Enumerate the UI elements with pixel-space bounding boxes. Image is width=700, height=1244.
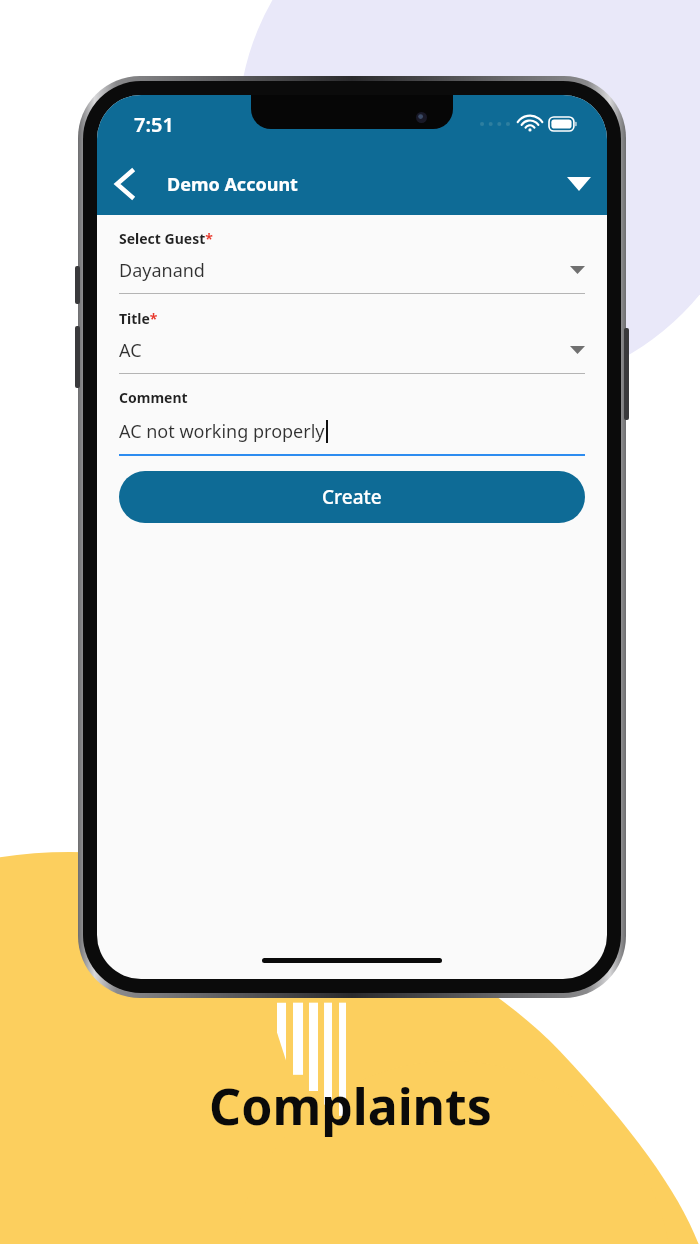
staticText: Demo Account <box>167 172 298 197</box>
button[interactable]: Dayanand <box>119 257 585 283</box>
button[interactable]: AC <box>119 337 585 363</box>
button[interactable]: AC not working properly <box>119 417 585 445</box>
button[interactable]: Select account <box>551 156 607 212</box>
button[interactable]: Back <box>97 157 151 211</box>
staticText: Select Guest* <box>119 229 213 248</box>
staticText: Title* <box>119 309 158 328</box>
staticText: Dayanand <box>119 258 205 283</box>
staticText: AC not working properly <box>119 419 325 444</box>
staticText: Complaints <box>209 1072 492 1140</box>
staticText: AC <box>119 338 142 363</box>
button[interactable]: Create <box>119 471 585 523</box>
staticText: Create <box>322 484 382 510</box>
staticText: 7:51 <box>134 111 174 138</box>
staticText: Comment <box>119 388 188 407</box>
